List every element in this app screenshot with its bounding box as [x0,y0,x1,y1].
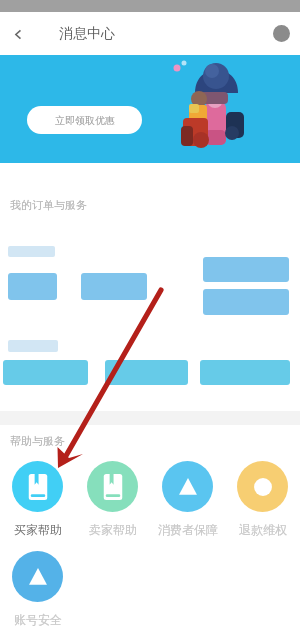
staticText: 消息中心 [59,25,115,43]
staticText: 退款维权 [239,522,287,537]
staticText: 立即领取优惠 [55,114,115,127]
button[interactable]: Back [5,21,31,47]
button[interactable]: 消费者保障 [150,461,225,537]
staticText: 消费者保障 [158,522,218,537]
button[interactable]: 账号安全 [0,551,75,627]
button[interactable]: 立即领取优惠 [27,106,142,134]
staticText: 卖家帮助 [89,522,137,537]
staticText: 帮助与服务 [10,434,65,448]
staticText: 我的订单与服务 [10,198,87,212]
button[interactable]: 卖家帮助 [75,461,150,537]
button[interactable]: Profile [273,25,290,42]
staticText: 账号安全 [14,612,62,627]
staticText: 买家帮助 [14,522,62,537]
button[interactable]: 买家帮助 [0,461,75,537]
button[interactable]: 退款维权 [225,461,300,537]
